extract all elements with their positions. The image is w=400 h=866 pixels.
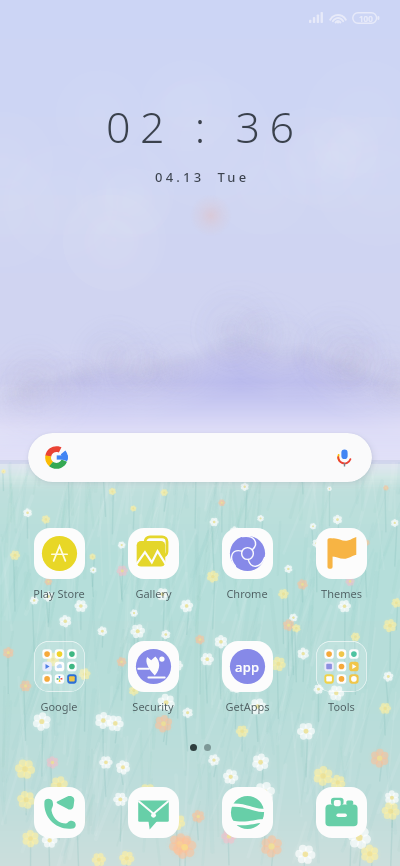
button[interactable]: Phone [12, 787, 106, 838]
staticText: Security [132, 699, 174, 714]
staticText: 100 [359, 13, 373, 24]
button[interactable]: Chrome [200, 528, 294, 601]
staticText: app [235, 658, 260, 676]
button[interactable]: Security [106, 641, 200, 714]
staticText: 04.13 Tue [155, 168, 250, 186]
button[interactable]: Toolbox [294, 787, 388, 838]
button[interactable]: Google [12, 641, 106, 714]
button[interactable]: Tools [294, 641, 388, 714]
staticText: Tools [328, 699, 355, 714]
staticText: Google [40, 699, 78, 714]
button[interactable]: Browser [200, 787, 294, 838]
button[interactable]: Play Store [12, 528, 106, 601]
staticText: 02 : 36 [106, 97, 304, 156]
staticText: GetApps [225, 699, 270, 714]
button[interactable] [28, 433, 372, 482]
button[interactable]: Themes [294, 528, 388, 601]
staticText: Chrome [226, 586, 268, 601]
staticText: Themes [321, 586, 362, 601]
button[interactable]: app [200, 641, 294, 714]
staticText: Gallery [135, 586, 172, 601]
staticText: Play Store [33, 586, 85, 601]
button[interactable]: Messages [106, 787, 200, 838]
button[interactable]: Gallery [106, 528, 200, 601]
